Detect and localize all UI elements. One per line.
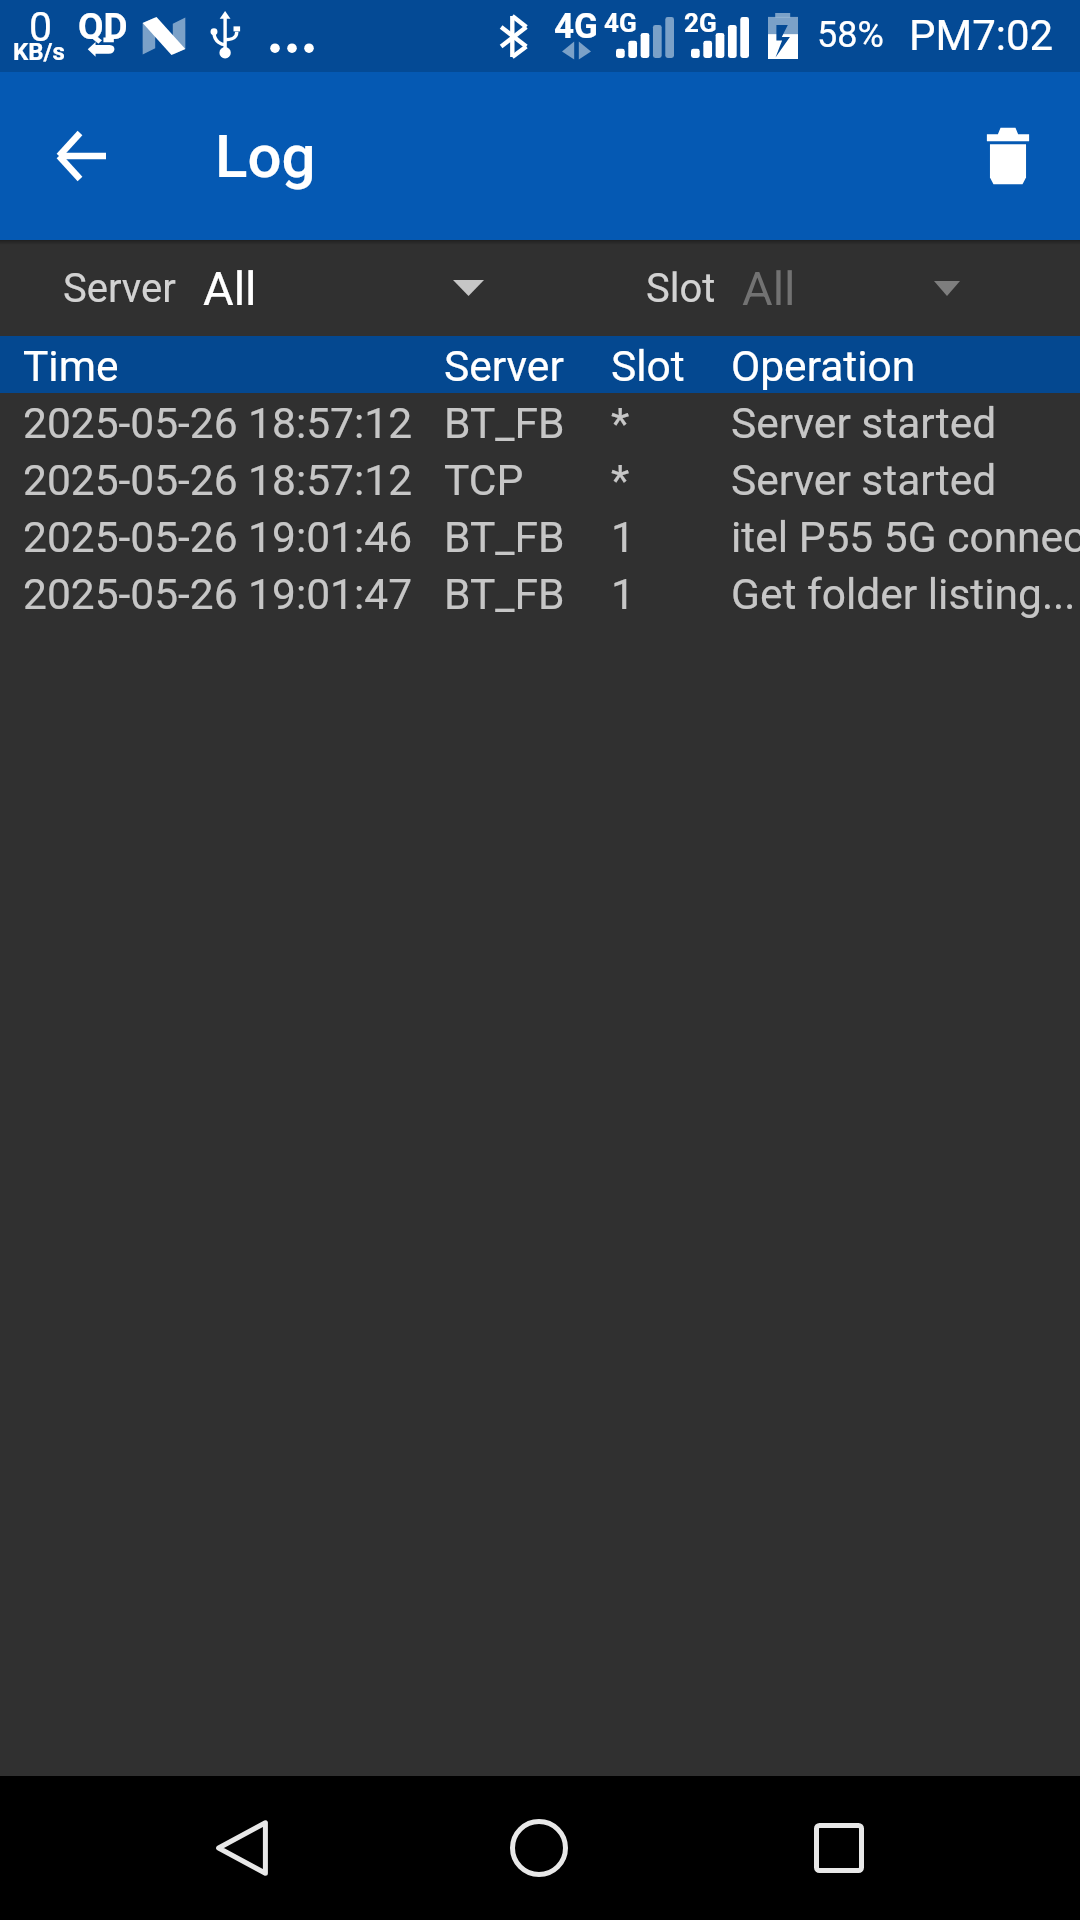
staticText: 2025-05-26 19:01:46 bbox=[23, 513, 413, 563]
button[interactable]: 2025-05-26 18:57:12 bbox=[0, 393, 1080, 450]
staticText: 2025-05-26 19:01:47 bbox=[23, 570, 413, 620]
staticText: Operation bbox=[731, 342, 916, 392]
staticText: Server started bbox=[731, 456, 997, 506]
staticText: itel P55 5G connected bbox=[731, 513, 1080, 563]
staticText: Server bbox=[444, 342, 564, 392]
staticText: 4G bbox=[604, 8, 637, 38]
staticText: 58% bbox=[817, 14, 884, 56]
button[interactable]: Clear log bbox=[912, 72, 1080, 240]
staticText: Server bbox=[63, 265, 176, 312]
staticText: 4G bbox=[554, 6, 598, 47]
staticText: Get folder listing... bbox=[731, 570, 1076, 620]
staticText: Time bbox=[23, 342, 119, 392]
button[interactable]: Back bbox=[170, 1776, 314, 1920]
staticText: Server started bbox=[731, 399, 997, 449]
staticText: BT_FB bbox=[444, 399, 565, 449]
button[interactable]: Home bbox=[468, 1776, 612, 1920]
button[interactable]: Recent apps bbox=[766, 1776, 910, 1920]
staticText: All bbox=[742, 261, 796, 316]
staticText: 2025-05-26 18:57:12 bbox=[23, 456, 413, 506]
staticText: Slot bbox=[611, 342, 685, 392]
staticText: 1 bbox=[611, 513, 635, 563]
button[interactable]: Slot bbox=[640, 240, 985, 336]
staticText: 2025-05-26 18:57:12 bbox=[23, 399, 413, 449]
staticText: 0 bbox=[29, 3, 53, 51]
staticText: 2G bbox=[684, 8, 717, 38]
staticText: PM7:02 bbox=[909, 11, 1054, 60]
staticText: All bbox=[203, 261, 257, 316]
staticText: TCP bbox=[444, 456, 524, 506]
staticText: * bbox=[611, 399, 630, 449]
button[interactable]: 2025-05-26 19:01:47 bbox=[0, 564, 1080, 621]
staticText: BT_FB bbox=[444, 570, 565, 620]
staticText: 1 bbox=[611, 570, 635, 620]
staticText: KB/s bbox=[13, 38, 65, 66]
staticText: Log bbox=[215, 121, 316, 191]
button[interactable]: Navigate up bbox=[0, 72, 164, 240]
button[interactable]: 2025-05-26 19:01:46 bbox=[0, 507, 1080, 564]
button[interactable]: 2025-05-26 18:57:12 bbox=[0, 450, 1080, 507]
button[interactable]: Server bbox=[55, 240, 500, 336]
staticText: Slot bbox=[646, 265, 716, 312]
staticText: * bbox=[611, 456, 630, 506]
staticText: BT_FB bbox=[444, 513, 565, 563]
staticText: QD bbox=[78, 5, 128, 48]
